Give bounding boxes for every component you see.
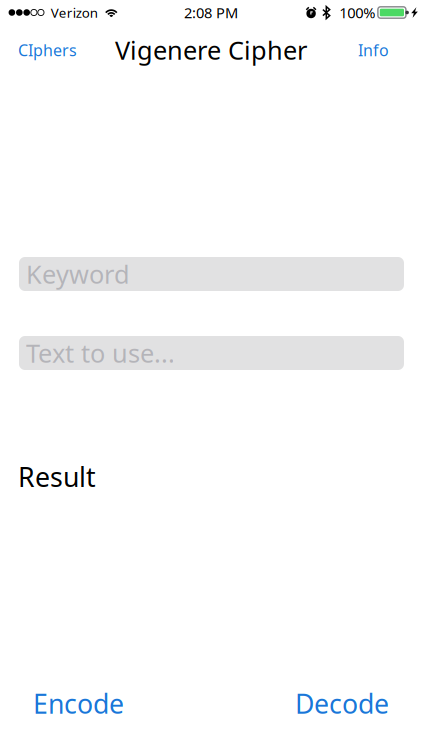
button[interactable]: Info	[323, 29, 422, 71]
button[interactable]: Decode	[281, 678, 403, 729]
staticText: Keyword	[26, 257, 130, 291]
button[interactable]: Text to use...	[19, 336, 404, 370]
button[interactable]: Encode	[19, 678, 138, 729]
staticText: CIphers	[18, 39, 77, 61]
button[interactable]: Keyword	[19, 257, 404, 291]
staticText: Decode	[295, 686, 389, 721]
staticText: 2:08 PM	[184, 3, 238, 22]
staticText: Vigenere Cipher	[115, 33, 307, 67]
staticText: 100%	[339, 3, 375, 22]
staticText: Encode	[33, 686, 124, 721]
staticText: Text to use...	[26, 336, 175, 370]
button[interactable]: CIphers	[0, 29, 95, 71]
staticText: Verizon	[51, 4, 98, 21]
staticText: Info	[358, 39, 389, 61]
staticText: Result	[18, 459, 96, 494]
